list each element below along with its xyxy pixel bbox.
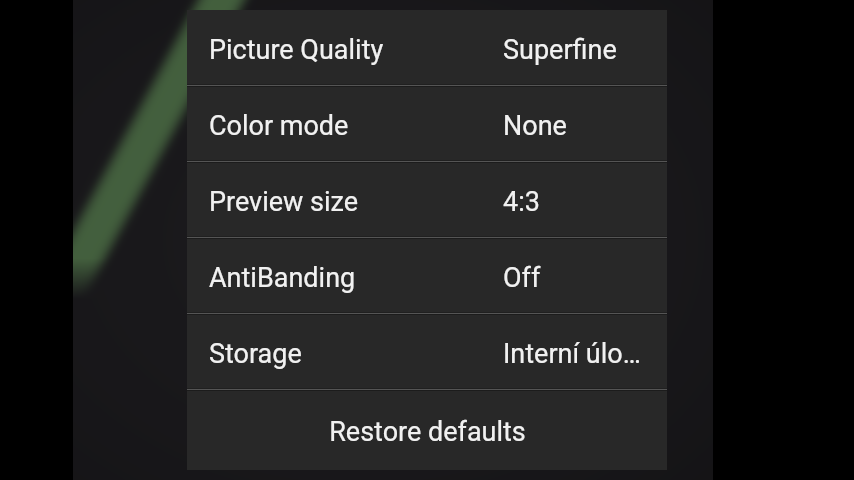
staticText: Off [503,262,653,294]
button[interactable]: AntiBanding [187,238,667,313]
staticText: Storage [209,338,302,370]
button[interactable]: Restore defaults [187,390,667,470]
staticText: Picture Quality [209,34,384,66]
staticText: Restore defaults [329,416,526,448]
staticText: 4:3 [503,186,653,218]
staticText: Color mode [209,110,349,142]
button[interactable]: Picture Quality [187,10,667,85]
staticText: AntiBanding [209,262,356,294]
button[interactable]: Storage [187,314,667,389]
staticText: Interní úlo… [503,338,653,370]
staticText: None [503,110,653,142]
staticText: Preview size [209,186,359,218]
button[interactable]: Preview size [187,162,667,237]
staticText: Superfine [503,34,653,66]
button[interactable]: Color mode [187,86,667,161]
